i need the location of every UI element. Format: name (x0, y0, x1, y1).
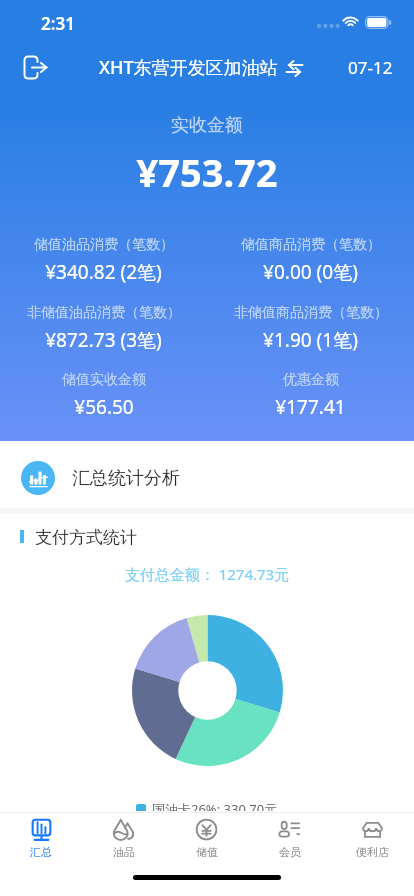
staticText: 会员 (279, 845, 301, 859)
staticText: 支付总金额： 1274.73元 (0, 564, 414, 584)
button[interactable]: 会员 (248, 813, 331, 864)
staticText: 油品 (113, 845, 135, 859)
button[interactable]: 储值 (165, 813, 248, 864)
staticText: 非储值商品消费（笔数） (234, 304, 388, 322)
button[interactable]: 切换油站 (283, 57, 305, 79)
button[interactable]: 汇总统计分析 (0, 441, 414, 508)
button[interactable]: 退出登录 (15, 47, 55, 87)
staticText: 便利店 (356, 845, 389, 859)
button[interactable]: 07-12 (348, 56, 393, 79)
button[interactable]: 汇总 (0, 813, 82, 864)
staticText: 储值实收金额 (62, 371, 146, 389)
staticText: 非储值油品消费（笔数） (27, 304, 181, 322)
staticText: 2:31 (41, 12, 75, 35)
staticText: 支付方式统计 (35, 527, 137, 545)
staticText: ¥177.41 (275, 394, 346, 420)
staticText: 汇总 (30, 845, 52, 859)
staticText: ¥872.73 (3笔) (45, 327, 162, 353)
staticText: 储值油品消费（笔数） (34, 236, 174, 254)
staticText: ¥0.00 (0笔) (263, 259, 358, 285)
staticText: 汇总统计分析 (72, 467, 180, 490)
button[interactable]: 油品 (82, 813, 165, 864)
staticText: 储值 (196, 845, 218, 859)
staticText: ¥1.90 (1笔) (263, 327, 358, 353)
staticText: XHT东营开发区加油站 (99, 55, 278, 80)
staticText: ¥753.72 (0, 146, 414, 198)
staticText: ¥340.82 (2笔) (45, 259, 162, 285)
staticText: ¥56.50 (74, 394, 134, 420)
staticText: 实收金额 (0, 114, 414, 137)
staticText: 储值商品消费（笔数） (241, 236, 381, 254)
button[interactable]: 便利店 (331, 813, 414, 864)
staticText: 国油卡26%: 330.70元 (152, 800, 278, 818)
staticText: 优惠金额 (283, 371, 339, 389)
